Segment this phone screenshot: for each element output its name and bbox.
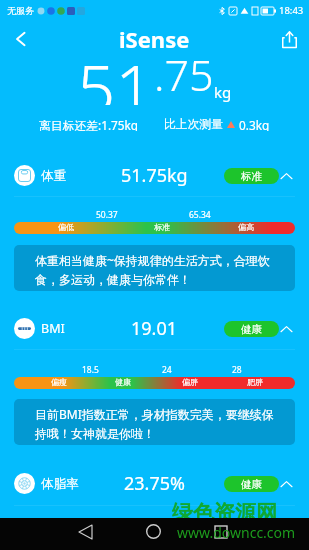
staticText: .75 bbox=[154, 45, 214, 104]
staticText: kg bbox=[214, 82, 232, 102]
button[interactable]: BMI bbox=[0, 309, 309, 348]
staticText: iSense bbox=[119, 24, 190, 54]
staticText: 0.3kg bbox=[239, 117, 270, 131]
staticText: 65.34 bbox=[189, 209, 211, 221]
staticText: 绿色资源网 bbox=[172, 500, 277, 526]
staticText: 健康 bbox=[241, 478, 262, 491]
staticText: 目前BMI指数正常，身材指数完美，要继续保 持哦！女神就是你啦！ bbox=[35, 406, 274, 441]
button[interactable]: 体重 bbox=[0, 156, 309, 195]
staticText: 50.37 bbox=[96, 209, 118, 221]
staticText: 24 bbox=[162, 364, 172, 376]
staticText: BMI bbox=[41, 320, 65, 337]
staticText: 健康 bbox=[115, 377, 131, 387]
staticText: 标准 bbox=[241, 170, 262, 183]
staticText: 19.01 bbox=[131, 316, 178, 341]
staticText: 偏胖 bbox=[182, 377, 198, 387]
staticText: www.downcc.com bbox=[177, 523, 296, 542]
button[interactable]: Recents bbox=[204, 518, 238, 545]
staticText: 偏瘦 bbox=[51, 377, 67, 387]
staticText: 体脂率 bbox=[41, 476, 79, 492]
staticText: 51 bbox=[77, 41, 154, 105]
staticText: 体重相当健康~保持规律的生活方式，合理饮 食，多运动，健康与你常伴！ bbox=[35, 252, 270, 287]
staticText: 无服务 bbox=[7, 5, 34, 16]
staticText: 健康 bbox=[241, 323, 262, 336]
staticText: 偏高 bbox=[238, 222, 254, 232]
staticText: 18.5 bbox=[82, 364, 99, 376]
button[interactable]: Home bbox=[136, 518, 170, 545]
button[interactable]: Back bbox=[0, 22, 40, 56]
staticText: 偏低 bbox=[58, 222, 74, 232]
button[interactable]: 体脂率 bbox=[0, 464, 309, 503]
staticText: 标准 bbox=[154, 222, 170, 232]
button[interactable]: Share bbox=[269, 22, 309, 56]
staticText: 28 bbox=[232, 364, 242, 376]
staticText: 离目标还差:1.75kg bbox=[39, 117, 139, 131]
staticText: 肥胖 bbox=[247, 377, 263, 387]
staticText: 比上次测量 bbox=[164, 117, 223, 131]
staticText: 23.75% bbox=[124, 471, 185, 496]
staticText: 18:43 bbox=[279, 4, 304, 17]
staticText: 51.75kg bbox=[121, 163, 188, 188]
button[interactable]: Back bbox=[68, 518, 102, 545]
staticText: 体重 bbox=[41, 168, 66, 184]
